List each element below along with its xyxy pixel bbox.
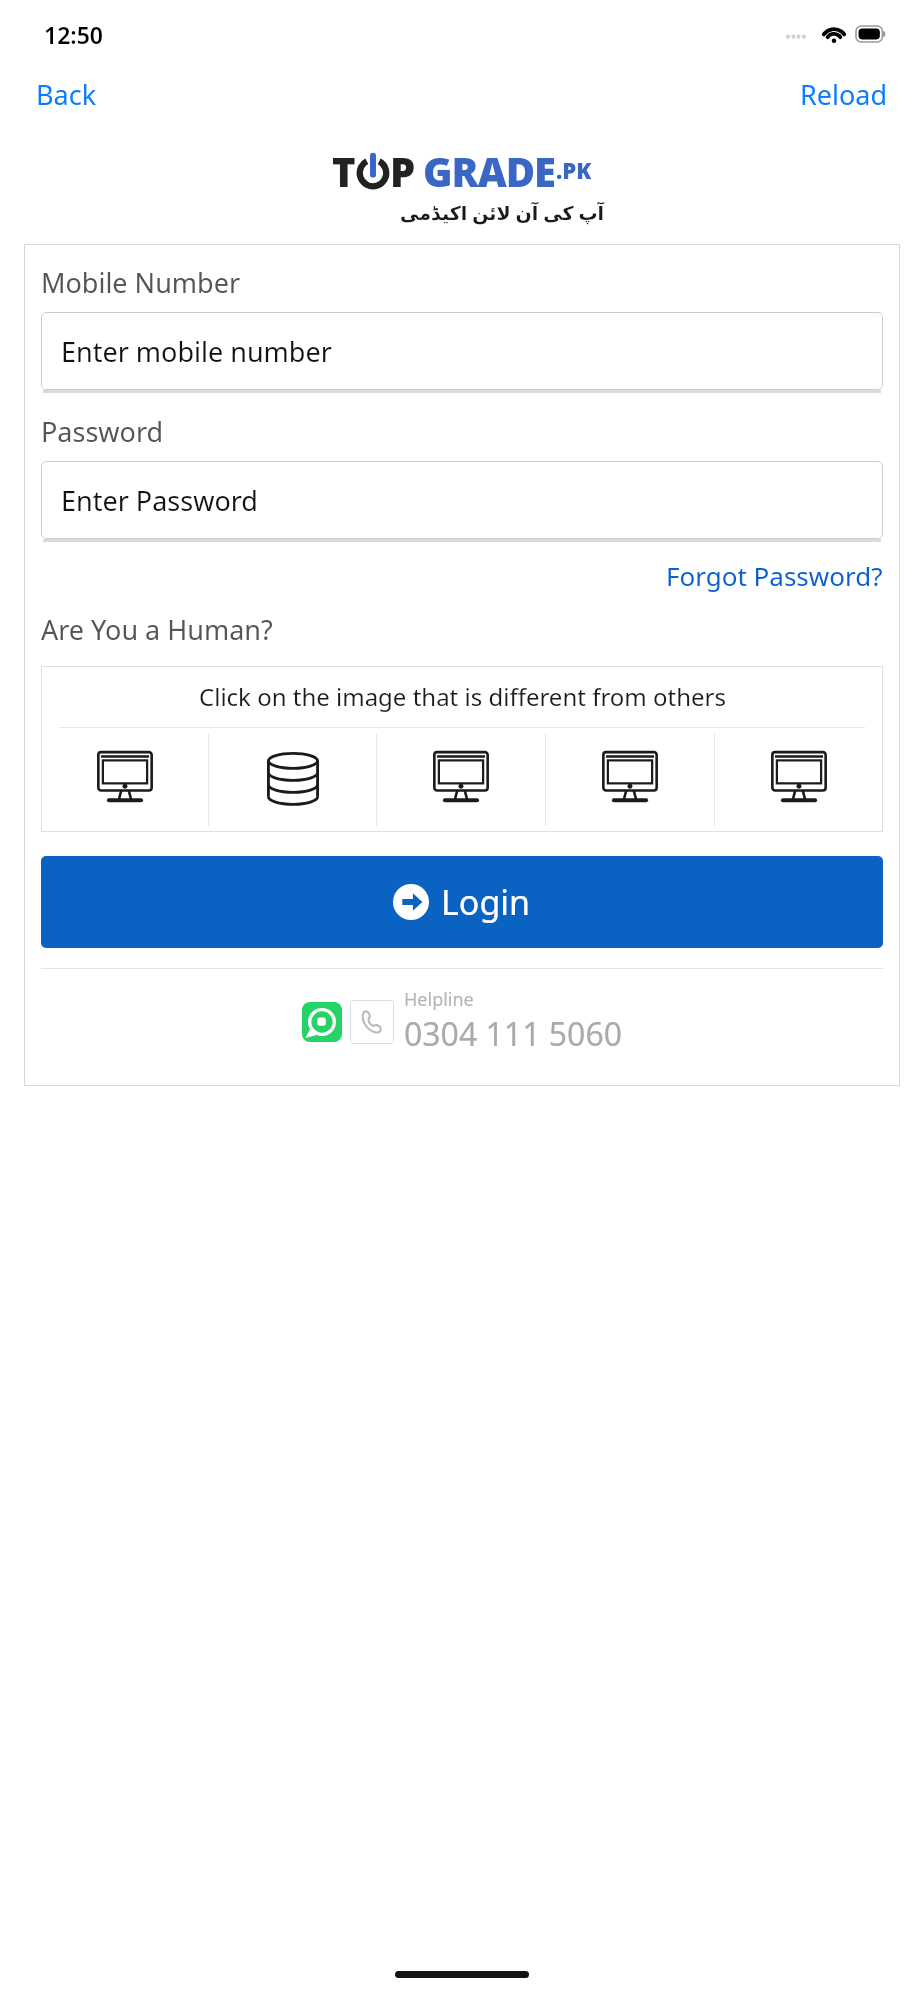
button[interactable]: Login bbox=[41, 856, 883, 948]
button[interactable]: Enter mobile number bbox=[41, 312, 883, 390]
button[interactable]: Back bbox=[36, 76, 97, 113]
staticText: T bbox=[332, 144, 356, 198]
button[interactable]: Monitor image option bbox=[546, 728, 714, 832]
button[interactable]: WhatsApp bbox=[302, 1002, 342, 1042]
staticText: Enter mobile number bbox=[61, 333, 332, 370]
staticText: Mobile Number bbox=[41, 264, 241, 301]
staticText: Click on the image that is different fro… bbox=[199, 680, 726, 713]
staticText: Enter Password bbox=[61, 482, 258, 519]
button[interactable]: Database image option bbox=[209, 728, 376, 832]
staticText: Login bbox=[441, 879, 531, 925]
button[interactable]: Monitor image option bbox=[715, 728, 883, 832]
staticText: .PK bbox=[556, 155, 592, 185]
button[interactable]: Call helpline bbox=[350, 1000, 394, 1044]
button[interactable]: Enter Password bbox=[41, 461, 883, 539]
button[interactable]: Forgot Password? bbox=[666, 558, 883, 593]
staticText: 12:50 bbox=[44, 19, 103, 50]
staticText: آپ کی آن لائن اکیڈمی bbox=[400, 200, 605, 226]
staticText: Are You a Human? bbox=[41, 611, 273, 648]
staticText: Forgot Password? bbox=[666, 558, 883, 593]
staticText: GRADE bbox=[423, 144, 556, 198]
staticText: Back bbox=[36, 76, 97, 113]
button[interactable]: Monitor image option bbox=[377, 728, 545, 832]
button[interactable]: Monitor image option bbox=[41, 728, 208, 832]
staticText: Password bbox=[41, 413, 164, 450]
staticText: Reload bbox=[800, 76, 888, 113]
button[interactable]: Reload bbox=[800, 76, 888, 113]
staticText: 0304 111 5060 bbox=[404, 1012, 622, 1056]
staticText: P bbox=[390, 144, 416, 198]
staticText: Helpline bbox=[404, 987, 474, 1012]
